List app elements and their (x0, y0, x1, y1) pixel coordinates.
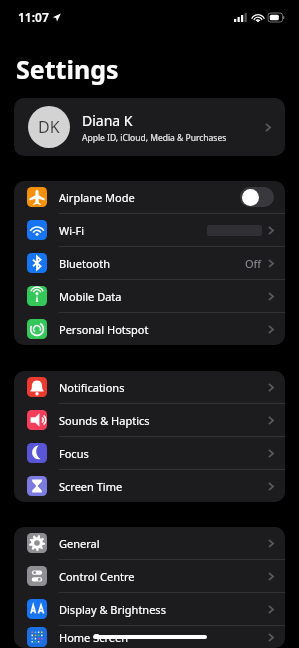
staticText: Display & Brightness (59, 602, 268, 617)
staticText: Screen Time (59, 479, 268, 494)
staticText: Focus (59, 446, 268, 461)
staticText: Personal Hotspot (59, 322, 268, 337)
button[interactable]: Control Centre (14, 560, 285, 592)
button[interactable]: General (14, 527, 285, 559)
staticText: Home Screen (59, 630, 268, 645)
staticText: Airplane Mode (59, 190, 240, 205)
staticText: Mobile Data (59, 289, 268, 304)
staticText: Settings (16, 52, 119, 86)
staticText: General (59, 536, 268, 551)
button[interactable]: Home Screen (14, 626, 285, 648)
button[interactable]: Airplane Mode toggle (240, 187, 274, 207)
staticText: Apple ID, iCloud, Media & Purchases (82, 132, 227, 144)
button[interactable]: Sounds & Haptics (14, 404, 285, 436)
button[interactable]: Display & Brightness (14, 593, 285, 625)
button[interactable]: Mobile Data (14, 280, 285, 312)
staticText: Bluetooth (59, 256, 245, 271)
button[interactable]: Screen Time (14, 470, 285, 502)
staticText: Off (245, 256, 262, 271)
button[interactable]: Airplane Mode (14, 181, 285, 213)
staticText: Notifications (59, 380, 268, 395)
button[interactable]: Notifications (14, 371, 285, 403)
button[interactable]: Wi-Fi (14, 214, 285, 246)
staticText: DK (38, 116, 60, 138)
button[interactable]: Focus (14, 437, 285, 469)
staticText: 11:07 (18, 9, 49, 25)
button[interactable]: Bluetooth (14, 247, 285, 279)
staticText: Control Centre (59, 569, 268, 584)
staticText: Wi-Fi (59, 223, 207, 238)
button[interactable]: DK (14, 98, 285, 156)
staticText: Diana K (82, 111, 133, 130)
button[interactable]: Personal Hotspot (14, 313, 285, 345)
staticText: Sounds & Haptics (59, 413, 268, 428)
